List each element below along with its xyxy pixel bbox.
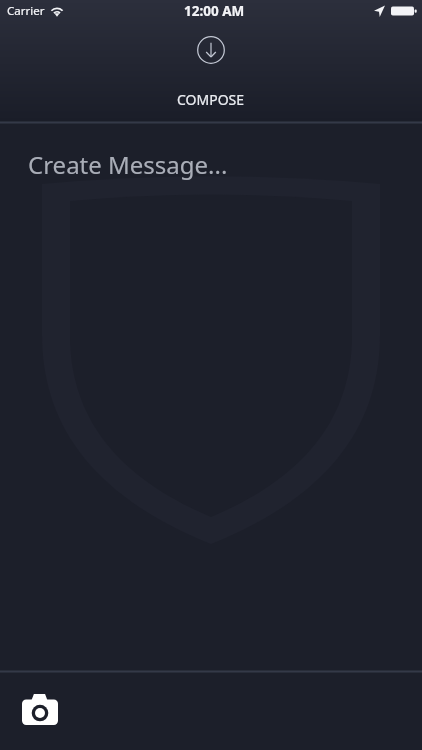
staticText: COMPOSE	[177, 90, 245, 109]
button[interactable]: Collapse	[197, 36, 225, 64]
staticText: Carrier	[7, 3, 45, 19]
button[interactable]: Camera	[22, 694, 58, 725]
staticText: 12:00 AM	[184, 2, 245, 20]
button[interactable]: Create Message...	[0, 124, 422, 670]
staticText: Create Message...	[28, 148, 228, 181]
